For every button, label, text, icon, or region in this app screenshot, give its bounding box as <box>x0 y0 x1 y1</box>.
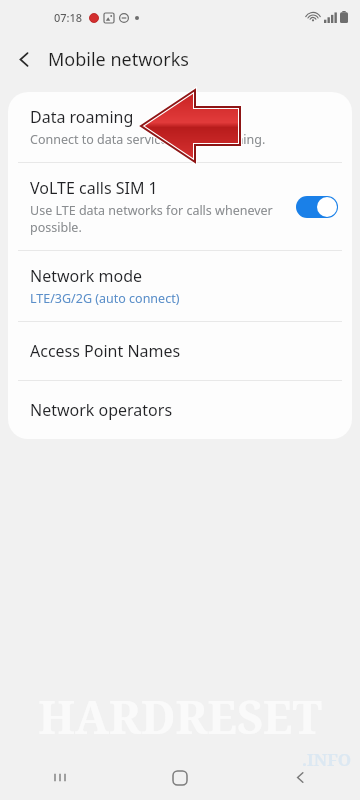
staticText: .INFO <box>302 748 352 771</box>
button[interactable]: Recents <box>0 755 120 800</box>
staticText: Mobile networks <box>48 47 189 72</box>
staticText: Network operators <box>30 399 173 421</box>
staticText: Use LTE data networks for calls whenever… <box>30 202 284 236</box>
staticText: 07:18 <box>54 10 83 25</box>
button[interactable]: Data roaming <box>8 92 352 162</box>
button[interactable]: Network mode <box>8 251 352 321</box>
button[interactable]: Back <box>0 35 48 83</box>
button[interactable]: Home <box>120 755 240 800</box>
staticText: Access Point Names <box>30 340 181 362</box>
button[interactable]: Back <box>240 755 360 800</box>
staticText: Network mode <box>30 265 143 287</box>
button[interactable]: Network operators <box>8 381 352 439</box>
staticText: HARDRESET <box>0 686 360 747</box>
staticText: Data roaming <box>30 106 134 128</box>
staticText: LTE/3G/2G (auto connect) <box>30 290 180 307</box>
button[interactable]: VoLTE toggle on <box>296 196 338 218</box>
button[interactable]: Access Point Names <box>8 322 352 380</box>
staticText: VoLTE calls SIM 1 <box>30 177 158 199</box>
button[interactable]: VoLTE calls SIM 1 <box>8 163 352 250</box>
staticText: Connect to data services when roaming. <box>30 131 266 148</box>
